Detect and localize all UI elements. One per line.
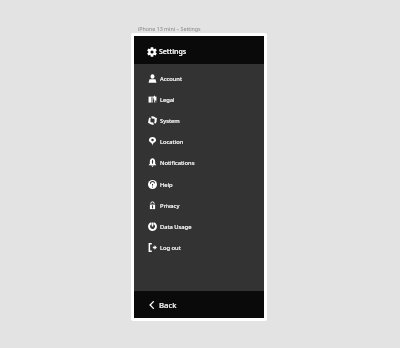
button[interactable]: Help: [134, 174, 264, 195]
staticText: iPhone 13 mini – Settings: [138, 25, 201, 32]
staticText: Location: [160, 138, 184, 146]
button[interactable]: Data Usage: [134, 216, 264, 237]
button[interactable]: Log out: [134, 237, 264, 258]
button[interactable]: Notifications: [134, 152, 264, 173]
button[interactable]: Privacy: [134, 195, 264, 216]
staticText: Legal: [160, 96, 175, 104]
staticText: Help: [160, 181, 173, 189]
button[interactable]: System: [134, 110, 264, 131]
button[interactable]: Account: [134, 68, 264, 89]
button[interactable]: Back: [134, 291, 264, 318]
staticText: Data Usage: [160, 223, 192, 231]
staticText: Back: [159, 300, 177, 311]
staticText: Log out: [160, 244, 181, 252]
staticText: System: [160, 117, 180, 125]
button[interactable]: Legal: [134, 89, 264, 110]
staticText: Account: [160, 75, 183, 83]
staticText: Notifications: [160, 159, 195, 167]
staticText: Privacy: [160, 202, 180, 210]
staticText: Settings: [159, 47, 187, 57]
button[interactable]: Location: [134, 131, 264, 152]
button[interactable]: Settings: [134, 36, 264, 64]
